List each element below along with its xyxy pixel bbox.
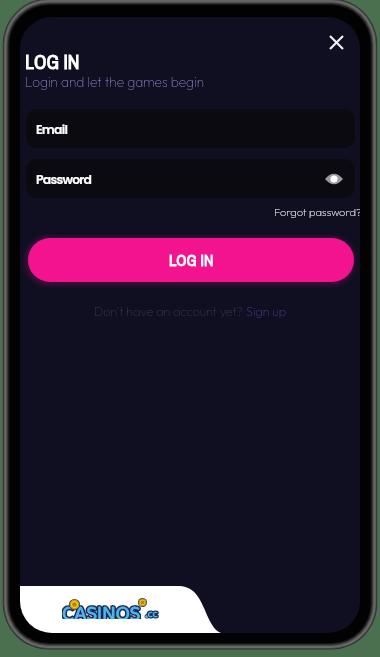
- staticText: Email: [36, 121, 68, 138]
- staticText: Password: [36, 171, 92, 188]
- staticText: Sign up: [246, 303, 287, 319]
- button[interactable]: Close: [323, 29, 350, 56]
- staticText: LOG IN: [169, 249, 214, 271]
- staticText: CASINOS: [62, 597, 141, 619]
- staticText: CASINOS: [62, 597, 141, 619]
- button[interactable]: Casinos.cc: [62, 597, 166, 619]
- staticText: Forgot password?: [274, 205, 360, 219]
- button[interactable]: LOG IN: [28, 238, 354, 282]
- staticText: .cc: [146, 605, 158, 623]
- button[interactable]: Password: [26, 159, 355, 198]
- button[interactable]: Forgot password?: [272, 204, 360, 220]
- staticText: LOG IN: [25, 49, 80, 75]
- button[interactable]: Email: [26, 109, 355, 148]
- staticText: Don't have an account yet?: [94, 303, 246, 319]
- button[interactable]: Sign up: [246, 303, 287, 319]
- staticText: .cc: [146, 605, 158, 623]
- button[interactable]: Show password: [323, 168, 345, 190]
- staticText: Login and let the games begin: [25, 73, 204, 90]
